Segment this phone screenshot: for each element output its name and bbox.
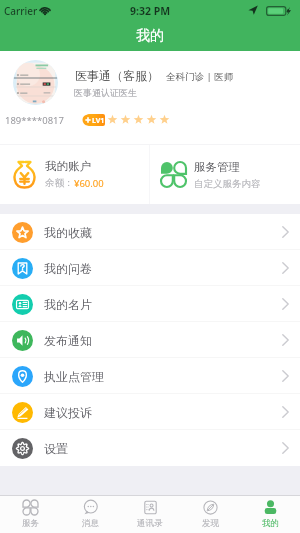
staticText: 服务 [22, 518, 39, 529]
button[interactable]: 消息 [60, 496, 120, 533]
staticText: 我的收藏 [44, 225, 92, 240]
button[interactable]: 医事通（客服） [0, 51, 300, 144]
staticText: 设置 [44, 441, 68, 456]
staticText: 189****0817 [5, 114, 64, 127]
staticText: 消息 [82, 518, 99, 529]
staticText: 我的 [136, 27, 164, 45]
staticText: 医事通（客服） [75, 68, 159, 83]
staticText: 医事通认证医生 [74, 87, 137, 98]
button[interactable]: 服务管理 [150, 145, 300, 204]
staticText: 自定义服务内容 [194, 178, 261, 190]
staticText: 余额： [45, 177, 74, 189]
staticText: LV1 [92, 116, 105, 126]
button[interactable]: 我的问卷 [0, 250, 300, 286]
button[interactable]: 设置 [0, 430, 300, 466]
button[interactable]: 发现 [180, 496, 240, 533]
button[interactable]: 发布通知 [0, 322, 300, 358]
button[interactable]: 执业点管理 [0, 358, 300, 394]
staticText: 9:32 PM [130, 4, 171, 18]
staticText: 我的 [262, 518, 279, 529]
staticText: 建议投诉 [44, 405, 92, 420]
staticText: 执业点管理 [44, 369, 104, 384]
staticText: 通讯录 [137, 518, 163, 529]
button[interactable]: 建议投诉 [0, 394, 300, 430]
button[interactable]: 通讯录 [120, 496, 180, 533]
staticText: 我的账户 [45, 159, 91, 173]
button[interactable]: 我的账户 [0, 145, 149, 204]
button[interactable]: 我的收藏 [0, 214, 300, 250]
staticText: 发现 [202, 518, 219, 529]
staticText: 服务管理 [194, 160, 240, 174]
button[interactable]: 我的名片 [0, 286, 300, 322]
button[interactable]: 我的 [240, 496, 300, 533]
staticText: 我的名片 [44, 297, 92, 312]
staticText: Carrier [4, 4, 38, 18]
button[interactable]: 服务 [0, 496, 60, 533]
staticText: 发布通知 [44, 333, 92, 348]
staticText: ¥60.00 [74, 177, 104, 190]
staticText: 我的问卷 [44, 261, 92, 276]
staticText: 全科门诊 | 医师 [166, 70, 234, 83]
